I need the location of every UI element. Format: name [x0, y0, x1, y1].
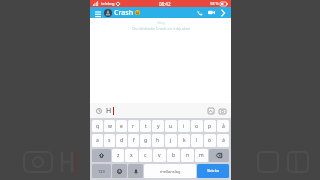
- staticText: telebrg: [101, 1, 115, 6]
- button[interactable]: v: [153, 149, 166, 162]
- staticText: x: [130, 152, 133, 159]
- staticText: r: [132, 123, 135, 130]
- staticText: å: [222, 123, 225, 130]
- button[interactable]: o: [191, 120, 203, 132]
- button[interactable]: mellanslag: [144, 164, 196, 178]
- button[interactable]: Menu: [94, 9, 102, 17]
- button[interactable]: ä: [217, 134, 229, 147]
- button[interactable]: u: [165, 120, 177, 132]
- staticText: k: [183, 137, 186, 144]
- staticText: idag: [157, 20, 165, 25]
- button[interactable]: ö: [204, 134, 216, 147]
- button[interactable]: Video call: [207, 8, 216, 17]
- button[interactable]: x: [125, 149, 138, 162]
- staticText: n: [186, 152, 190, 159]
- staticText: q: [96, 123, 100, 130]
- button[interactable]: s: [104, 134, 115, 147]
- button[interactable]: Contact avatar: [104, 9, 112, 17]
- staticText: a: [96, 137, 99, 144]
- button[interactable]: Emoji: [112, 164, 127, 178]
- button[interactable]: c: [139, 149, 152, 162]
- button[interactable]: e: [116, 120, 127, 132]
- staticText: j: [170, 137, 172, 144]
- button[interactable]: d: [116, 134, 127, 147]
- staticText: f: [133, 137, 135, 144]
- button[interactable]: å: [217, 120, 229, 132]
- button[interactable]: Backspace: [209, 149, 229, 162]
- staticText: c: [144, 152, 147, 159]
- staticText: u: [169, 123, 173, 130]
- button[interactable]: g: [140, 134, 151, 147]
- button[interactable]: y: [152, 120, 164, 132]
- button[interactable]: b: [167, 149, 180, 162]
- staticText: i: [183, 123, 185, 130]
- staticText: l: [196, 137, 198, 144]
- button[interactable]: i: [178, 120, 190, 132]
- button[interactable]: r: [128, 120, 139, 132]
- button[interactable]: More options: [219, 9, 227, 17]
- button[interactable]: Skicka: [197, 164, 229, 178]
- button[interactable]: Camera: [218, 106, 227, 115]
- button[interactable]: Timer: [94, 106, 103, 115]
- button[interactable]: p: [204, 120, 216, 132]
- button[interactable]: q: [92, 120, 103, 132]
- staticText: t: [145, 123, 147, 130]
- button[interactable]: f: [128, 134, 139, 147]
- staticText: ä: [222, 137, 225, 144]
- staticText: z: [117, 152, 120, 159]
- button[interactable]: h: [152, 134, 164, 147]
- button[interactable]: m: [195, 149, 208, 162]
- staticText: 08:42: [159, 1, 171, 7]
- button[interactable]: t: [140, 120, 151, 132]
- staticText: H: [106, 106, 112, 116]
- staticText: d: [120, 137, 124, 144]
- staticText: m: [199, 152, 204, 159]
- staticText: y: [157, 123, 160, 130]
- staticText: Du skickade Crash en inbjudan: [132, 26, 190, 31]
- staticText: g: [144, 137, 148, 144]
- button[interactable]: Crash: [114, 8, 134, 18]
- button[interactable]: a: [92, 134, 103, 147]
- staticText: b: [172, 152, 176, 159]
- staticText: 58 %: [210, 1, 219, 6]
- button[interactable]: z: [112, 149, 124, 162]
- button[interactable]: k: [178, 134, 190, 147]
- button[interactable]: n: [181, 149, 194, 162]
- staticText: e: [120, 123, 123, 130]
- staticText: v: [158, 152, 161, 159]
- button[interactable]: l: [191, 134, 203, 147]
- staticText: p: [208, 123, 212, 130]
- button[interactable]: j: [165, 134, 177, 147]
- staticText: s: [108, 137, 111, 144]
- button[interactable]: 123: [92, 164, 111, 178]
- button[interactable]: Call: [195, 8, 204, 17]
- staticText: mellanslag: [160, 169, 181, 174]
- staticText: o: [195, 123, 199, 130]
- button[interactable]: w: [104, 120, 115, 132]
- staticText: w: [108, 123, 112, 130]
- staticText: ö: [208, 137, 212, 144]
- button[interactable]: Voice input: [128, 164, 143, 178]
- button[interactable]: Attach photo: [206, 106, 215, 115]
- button[interactable]: Shift: [92, 149, 111, 162]
- staticText: h: [156, 137, 160, 144]
- staticText: Skicka: [207, 168, 220, 174]
- staticText: 123: [98, 169, 105, 174]
